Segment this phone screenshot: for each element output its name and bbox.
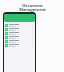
button[interactable]	[4, 23, 35, 27]
button[interactable]	[4, 27, 35, 31]
button[interactable]	[4, 31, 35, 35]
button[interactable]: Documents app bar	[4, 14, 35, 22]
button[interactable]	[4, 43, 35, 47]
staticText: Management	[19, 7, 46, 12]
staticText: Document	[22, 3, 43, 8]
button[interactable]	[4, 39, 35, 43]
button[interactable]	[4, 35, 35, 39]
